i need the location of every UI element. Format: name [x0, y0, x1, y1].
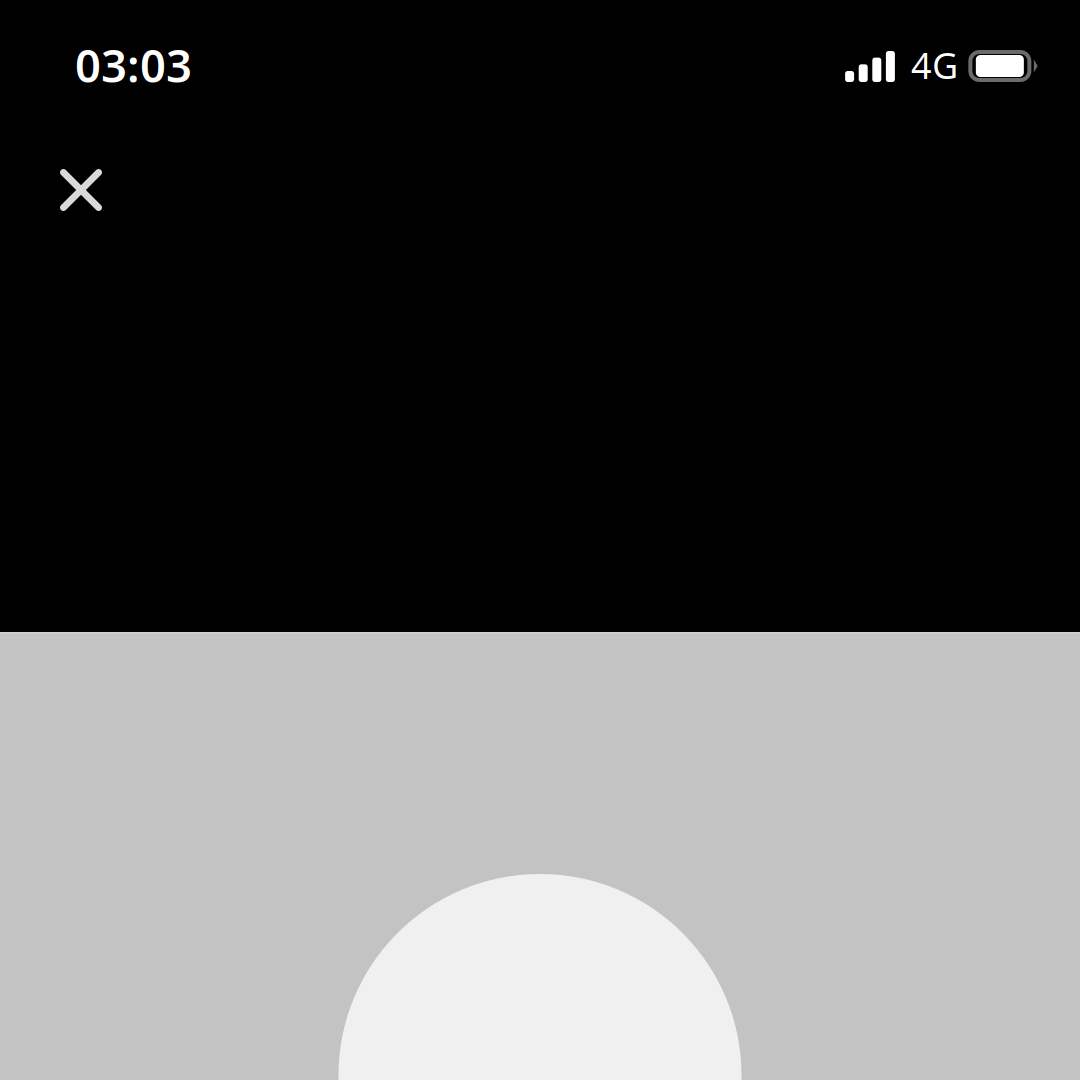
staticText: 4G — [911, 41, 958, 89]
button[interactable]: Close — [37, 146, 125, 234]
staticText: 03:03 — [75, 35, 192, 95]
